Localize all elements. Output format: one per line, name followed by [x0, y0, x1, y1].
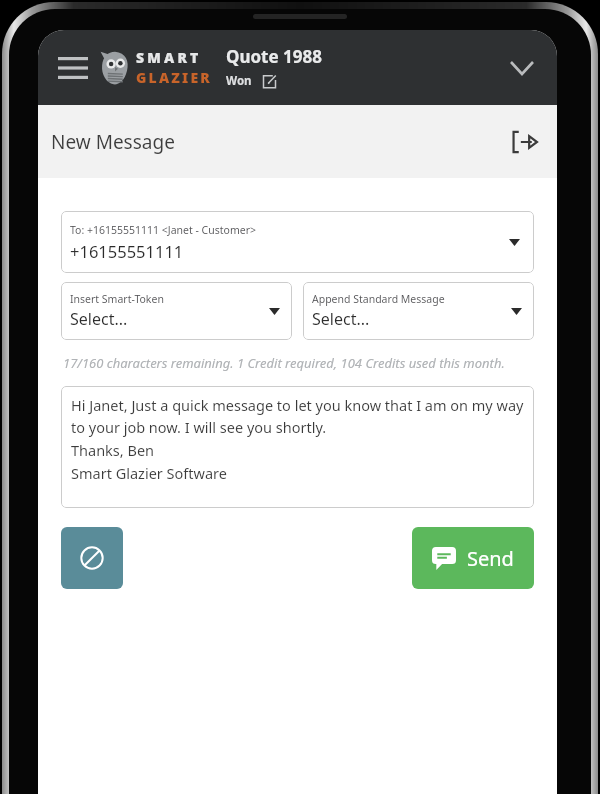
staticText: +16155551111 — [70, 240, 184, 262]
staticText: SMART — [136, 48, 202, 67]
button[interactable]: Expand — [501, 47, 543, 89]
button[interactable]: Cancel — [61, 527, 123, 589]
staticText: New Message — [51, 129, 175, 155]
staticText: Select... — [70, 308, 128, 330]
staticText: Quote 1988 — [226, 45, 322, 68]
staticText: 17/160 characters remaining. 1 Credit re… — [63, 354, 534, 372]
button[interactable]: Exit — [503, 120, 547, 164]
staticText: Won — [226, 73, 252, 89]
button[interactable]: Edit status — [260, 72, 278, 90]
staticText: Append Standard Message — [312, 292, 445, 306]
button[interactable]: Menu — [50, 45, 96, 91]
staticText: Insert Smart-Token — [70, 292, 164, 306]
button[interactable]: Append Standard Message — [303, 282, 534, 340]
staticText: Select... — [312, 308, 370, 330]
staticText: GLAZIER — [136, 68, 212, 87]
staticText: Send — [467, 545, 514, 572]
button[interactable]: Insert Smart-Token — [61, 282, 292, 340]
button[interactable]: Send — [412, 527, 534, 589]
button[interactable]: Hi Janet, Just a quick message to let yo… — [61, 386, 534, 508]
staticText: Hi Janet, Just a quick message to let yo… — [71, 395, 526, 483]
staticText: To: +16155551111 <Janet - Customer> — [70, 223, 256, 237]
button[interactable]: To: +16155551111 <Janet - Customer> — [61, 211, 534, 273]
